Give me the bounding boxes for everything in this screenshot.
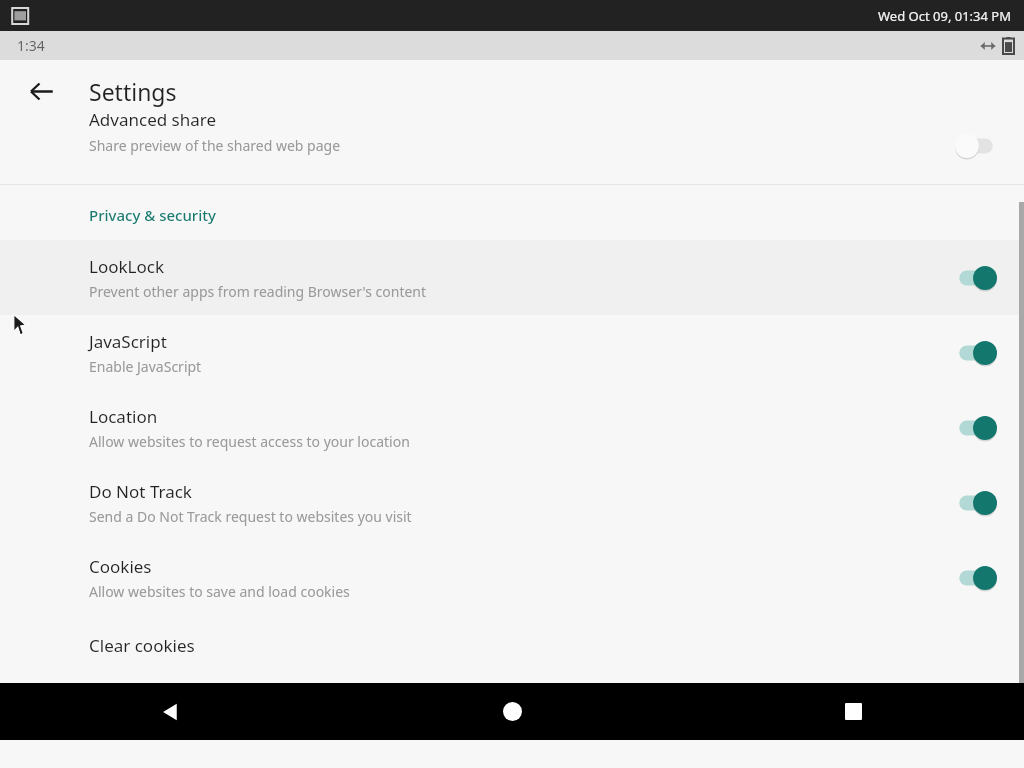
staticText: Share preview of the shared web page	[89, 136, 341, 155]
staticText: Send a Do Not Track request to websites …	[89, 507, 412, 526]
button[interactable]: Toggle on	[954, 565, 998, 591]
button[interactable]: Home	[342, 683, 683, 740]
staticText: Enable JavaScript	[89, 357, 202, 376]
button[interactable]: Cookies	[0, 540, 1024, 615]
button[interactable]: Recent apps	[683, 683, 1024, 740]
staticText: Clear cookies	[89, 634, 195, 657]
button[interactable]: Toggle on	[954, 265, 998, 291]
staticText: Allow websites to request access to your…	[89, 432, 410, 451]
staticText: Cookies	[89, 555, 152, 578]
staticText: Location	[89, 405, 158, 428]
button[interactable]: Advanced share	[0, 122, 1024, 184]
staticText: Advanced share	[89, 108, 217, 131]
staticText: Settings	[89, 76, 177, 107]
button[interactable]: JavaScript	[0, 315, 1024, 390]
staticText: JavaScript	[89, 330, 167, 353]
button[interactable]: Toggle on	[954, 490, 998, 516]
button[interactable]: Toggle on	[954, 415, 998, 441]
button[interactable]: Toggle on	[954, 340, 998, 366]
staticText: Privacy & security	[89, 205, 216, 225]
button[interactable]: LookLock	[0, 240, 1024, 315]
button[interactable]: Do Not Track	[0, 465, 1024, 540]
staticText: Prevent other apps from reading Browser'…	[89, 282, 427, 301]
button[interactable]: Location	[0, 390, 1024, 465]
button[interactable]: Back	[0, 683, 342, 740]
button[interactable]: Toggle off	[954, 133, 998, 159]
staticText: LookLock	[89, 255, 164, 278]
staticText: Do Not Track	[89, 480, 192, 503]
button[interactable]: Clear cookies	[0, 615, 1024, 675]
button[interactable]: Back	[18, 68, 64, 114]
staticText: 1:34	[17, 36, 45, 55]
staticText: Wed Oct 09, 01:34 PM	[878, 7, 1012, 25]
staticText: Allow websites to save and load cookies	[89, 582, 350, 601]
